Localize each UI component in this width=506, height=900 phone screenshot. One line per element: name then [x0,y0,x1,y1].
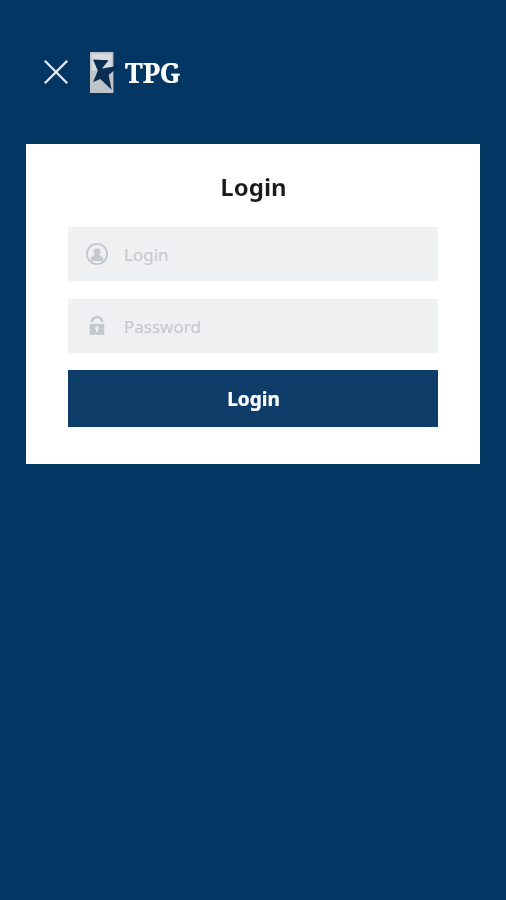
staticText: Login [227,386,280,412]
button[interactable]: Password [68,299,438,353]
staticText: Login [124,243,169,266]
staticText: TPG [125,54,181,91]
button[interactable]: Login [68,227,438,281]
staticText: Login [220,170,287,203]
button[interactable]: Close [34,50,78,94]
button[interactable]: Login [68,370,438,427]
staticText: Password [124,315,201,338]
